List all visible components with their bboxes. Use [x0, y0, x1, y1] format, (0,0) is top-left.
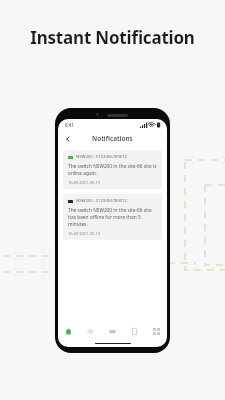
button[interactable]: Clients — [123, 323, 145, 339]
button[interactable]: Devices — [101, 323, 123, 339]
staticText: Notifications — [92, 134, 133, 143]
button[interactable]: More — [145, 323, 167, 339]
button[interactable]: NSW200 : 5123456789012 — [63, 150, 162, 189]
button[interactable]: NSW200 : 5123456789012 — [63, 194, 162, 240]
staticText: NSW200 : 5123456789012 — [76, 154, 128, 160]
staticText: The switch NSW200 in the site-66 site is… — [68, 163, 157, 177]
staticText: NSW200 : 5123456789012 — [76, 198, 128, 204]
staticText: 6:41 — [65, 122, 74, 128]
button[interactable]: Home — [58, 323, 79, 339]
staticText: Instant Notification — [0, 26, 225, 49]
staticText: 16:49 2021-05-19 — [68, 180, 101, 185]
button[interactable]: Network — [79, 323, 101, 339]
staticText: The switch NSW200 in the site-66 site ha… — [68, 207, 157, 228]
button[interactable]: Back — [62, 133, 74, 145]
staticText: 16:49 2021-05-19 — [68, 231, 101, 236]
